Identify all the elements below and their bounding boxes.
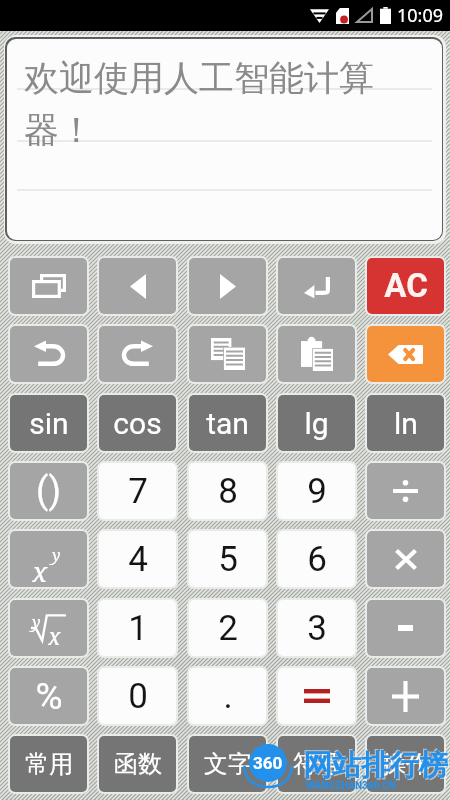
staticText: 0 [128,676,148,717]
button[interactable]: Paste [276,324,357,384]
staticText: 常用 [25,749,73,779]
button[interactable]: 9 [276,461,357,521]
button[interactable]: Undo [8,324,89,384]
staticText: 7 [128,471,148,512]
button[interactable]: () [8,461,89,521]
button[interactable]: Plus [365,666,446,726]
staticText: x [48,620,61,650]
staticText: 10:09 [397,3,444,28]
button[interactable]: cos [97,393,178,453]
button[interactable]: Redo [97,324,178,384]
staticText: y [32,611,41,633]
staticText: tan [206,406,249,441]
staticText: 操作 [382,749,430,779]
button[interactable]: 7 [97,461,178,521]
staticText: 网站排行榜 [302,746,447,783]
staticText: 4 [128,539,148,580]
button[interactable]: 文字 [187,734,268,794]
button[interactable]: 常用 [8,734,89,794]
button[interactable]: sin [8,393,89,453]
button[interactable]: 符号 [276,734,357,794]
staticText: 符号 [293,749,341,779]
button[interactable]: Minus [365,598,446,658]
staticText: 网站排行榜 [304,748,449,785]
staticText: 9 [307,471,327,512]
button[interactable]: Equals [276,666,357,726]
button[interactable]: tan [187,393,268,453]
staticText: y [52,544,61,566]
button[interactable]: 8 [187,461,268,521]
button[interactable]: Move right [187,256,268,316]
staticText: WANGZHAN360.CN [306,780,396,792]
staticText: 5 [218,539,238,580]
button[interactable]: Switch window [8,256,89,316]
button[interactable]: Divide [365,461,446,521]
button[interactable]: . [187,666,268,726]
staticText: 2 [218,608,238,649]
staticText: lg [304,406,329,441]
button[interactable]: AC [365,256,446,316]
button[interactable]: ln [365,393,446,453]
staticText: 文字 [204,749,252,779]
button[interactable]: 3 [276,598,357,658]
staticText: sin [29,406,69,441]
button[interactable]: 6 [276,529,357,589]
staticText: 3 [307,608,327,649]
button[interactable]: 5 [187,529,268,589]
staticText: % [35,675,63,718]
button[interactable]: 0 [97,666,178,726]
staticText: 1 [128,608,148,649]
button[interactable]: Enter [276,256,357,316]
staticText: 函数 [114,749,162,779]
button[interactable]: Power [8,529,89,589]
staticText: AC [384,266,428,305]
button[interactable]: Copy [187,324,268,384]
staticText: 网站排行榜 [303,747,448,784]
button[interactable]: Backspace [365,324,446,384]
staticText: 欢迎使用人工智能计算 器！ [24,56,374,152]
button[interactable]: % [8,666,89,726]
button[interactable]: 1 [97,598,178,658]
button[interactable]: Move left [97,256,178,316]
staticText: x [32,552,48,582]
staticText: cos [113,406,162,441]
button[interactable]: 4 [97,529,178,589]
button[interactable]: lg [276,393,357,453]
button[interactable]: 2 [187,598,268,658]
staticText: 8 [218,471,238,512]
button[interactable]: 操作 [365,734,446,794]
button[interactable]: Multiply [365,529,446,589]
staticText: ln [394,406,418,441]
staticText: 6 [307,539,327,580]
button[interactable]: Nth root [8,598,89,658]
button[interactable]: 函数 [97,734,178,794]
staticText: () [36,470,61,512]
staticText: 360 [253,753,283,773]
staticText: . [223,676,233,717]
